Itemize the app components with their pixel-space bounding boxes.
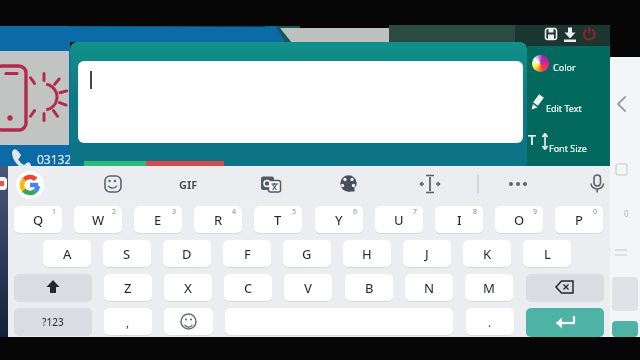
button[interactable]: X xyxy=(164,274,212,301)
staticText: ?123 xyxy=(42,315,64,329)
button[interactable] xyxy=(176,171,210,198)
button[interactable] xyxy=(612,95,634,117)
staticText: G xyxy=(302,245,312,263)
button[interactable]: E xyxy=(134,206,182,233)
button[interactable]: Font Size xyxy=(549,142,587,154)
staticText: 03132 xyxy=(37,151,72,167)
staticText: 4 xyxy=(232,207,237,217)
button[interactable] xyxy=(339,171,366,198)
staticText: I xyxy=(457,211,462,229)
button[interactable]: C xyxy=(224,274,272,301)
button[interactable]: J xyxy=(403,240,451,267)
button[interactable]: Z xyxy=(104,274,152,301)
button[interactable]: K xyxy=(463,240,511,267)
staticText: L xyxy=(544,245,551,263)
staticText: 8 xyxy=(473,207,478,217)
staticText: R xyxy=(214,211,223,229)
button[interactable]: W xyxy=(74,206,122,233)
staticText: 3 xyxy=(172,207,177,217)
staticText: W xyxy=(92,211,105,229)
button[interactable]: . xyxy=(466,308,514,335)
staticText: Q xyxy=(33,211,44,229)
staticText: F xyxy=(244,245,251,263)
staticText: B xyxy=(365,279,374,297)
button[interactable]: I xyxy=(435,206,483,233)
staticText: , xyxy=(126,314,130,330)
staticText: 9 xyxy=(533,207,538,217)
button[interactable] xyxy=(527,90,610,118)
staticText: 1 xyxy=(52,207,57,217)
staticText: E xyxy=(154,211,162,229)
staticText: S xyxy=(123,245,131,263)
button[interactable] xyxy=(562,26,579,44)
button[interactable] xyxy=(584,171,611,198)
staticText: D xyxy=(182,245,192,263)
staticText: T xyxy=(528,130,536,149)
button[interactable] xyxy=(532,55,549,72)
staticText: V xyxy=(304,279,312,297)
button[interactable] xyxy=(527,50,610,80)
staticText: M xyxy=(483,279,495,297)
button[interactable]: R xyxy=(194,206,242,233)
button[interactable]: D xyxy=(163,240,211,267)
button[interactable]: Color xyxy=(553,61,576,73)
button[interactable]: H xyxy=(343,240,391,267)
button[interactable]: V xyxy=(284,274,332,301)
staticText: 7 xyxy=(413,207,418,217)
button[interactable]: G xyxy=(283,240,331,267)
staticText: 2 xyxy=(112,207,117,217)
button[interactable]: U xyxy=(375,206,423,233)
staticText: T xyxy=(274,211,282,229)
button[interactable] xyxy=(14,274,92,301)
staticText: N xyxy=(424,279,435,297)
button[interactable]: O xyxy=(495,206,543,233)
button[interactable] xyxy=(16,171,44,199)
staticText: K xyxy=(483,245,492,263)
button[interactable]: S xyxy=(103,240,151,267)
button[interactable]: B xyxy=(345,274,393,301)
button[interactable]: Edit Text xyxy=(546,102,582,114)
staticText: 0 xyxy=(593,207,598,217)
button[interactable]: Q xyxy=(14,206,62,233)
staticText: H xyxy=(362,245,372,263)
button[interactable]: N xyxy=(405,274,453,301)
staticText: 5 xyxy=(292,207,297,217)
staticText: P xyxy=(575,211,583,229)
button[interactable] xyxy=(526,274,604,301)
button[interactable] xyxy=(100,171,127,198)
staticText: Y xyxy=(335,211,343,229)
button[interactable]: M xyxy=(465,274,513,301)
button[interactable]: ?123 xyxy=(14,308,92,335)
staticText: 0 xyxy=(624,208,629,219)
staticText: Z xyxy=(124,279,132,297)
button[interactable] xyxy=(543,26,560,44)
button[interactable] xyxy=(78,61,523,143)
button[interactable]: GIF xyxy=(179,177,198,192)
button[interactable] xyxy=(527,128,610,158)
button[interactable]: Y xyxy=(315,206,363,233)
staticText: O xyxy=(514,211,525,229)
button[interactable]: T xyxy=(254,206,302,233)
button[interactable]: P xyxy=(555,206,603,233)
button[interactable] xyxy=(505,171,532,198)
button[interactable] xyxy=(164,308,213,335)
button[interactable]: , xyxy=(104,308,152,335)
staticText: U xyxy=(394,211,404,229)
staticText: 6 xyxy=(353,207,358,217)
staticText: J xyxy=(425,245,429,263)
staticText: . xyxy=(488,314,492,330)
staticText: X xyxy=(184,279,192,297)
button[interactable]: A xyxy=(43,240,91,267)
button[interactable] xyxy=(581,26,598,44)
button[interactable] xyxy=(257,171,284,198)
button[interactable]: F xyxy=(223,240,271,267)
button[interactable]: L xyxy=(523,240,571,267)
button[interactable] xyxy=(417,171,444,198)
staticText: C xyxy=(244,279,253,297)
staticText: A xyxy=(63,245,72,263)
button[interactable] xyxy=(526,308,604,337)
